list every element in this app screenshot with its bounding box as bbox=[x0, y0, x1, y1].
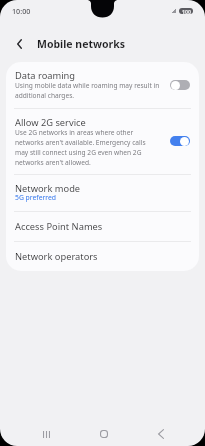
staticText: Use 2G networks in areas where other net… bbox=[15, 128, 160, 167]
staticText: Network mode bbox=[15, 182, 81, 195]
button[interactable]: Off bbox=[170, 80, 190, 90]
button[interactable]: Back bbox=[8, 33, 30, 55]
staticText: Access Point Names bbox=[15, 220, 103, 233]
staticText: Mobile networks bbox=[37, 37, 126, 51]
staticText: 10:00 bbox=[12, 6, 31, 16]
button[interactable]: Back bbox=[150, 423, 172, 445]
staticText: Allow 2G service bbox=[15, 116, 86, 129]
staticText: Data roaming bbox=[15, 69, 76, 82]
button[interactable]: On bbox=[170, 136, 190, 146]
button[interactable]: Allow 2G service bbox=[6, 109, 199, 174]
button[interactable]: Network mode bbox=[6, 175, 199, 211]
staticText: 100 bbox=[182, 8, 191, 14]
button[interactable]: Access Point Names bbox=[6, 212, 199, 241]
button[interactable]: Recent apps bbox=[35, 423, 57, 445]
button[interactable]: Data roaming bbox=[6, 62, 199, 108]
staticText: Using mobile data while roaming may resu… bbox=[15, 81, 160, 100]
staticText: 5G preferred bbox=[15, 193, 56, 202]
button[interactable]: Network operators bbox=[6, 242, 199, 271]
button[interactable]: Home bbox=[93, 423, 115, 445]
staticText: Network operators bbox=[15, 250, 98, 263]
